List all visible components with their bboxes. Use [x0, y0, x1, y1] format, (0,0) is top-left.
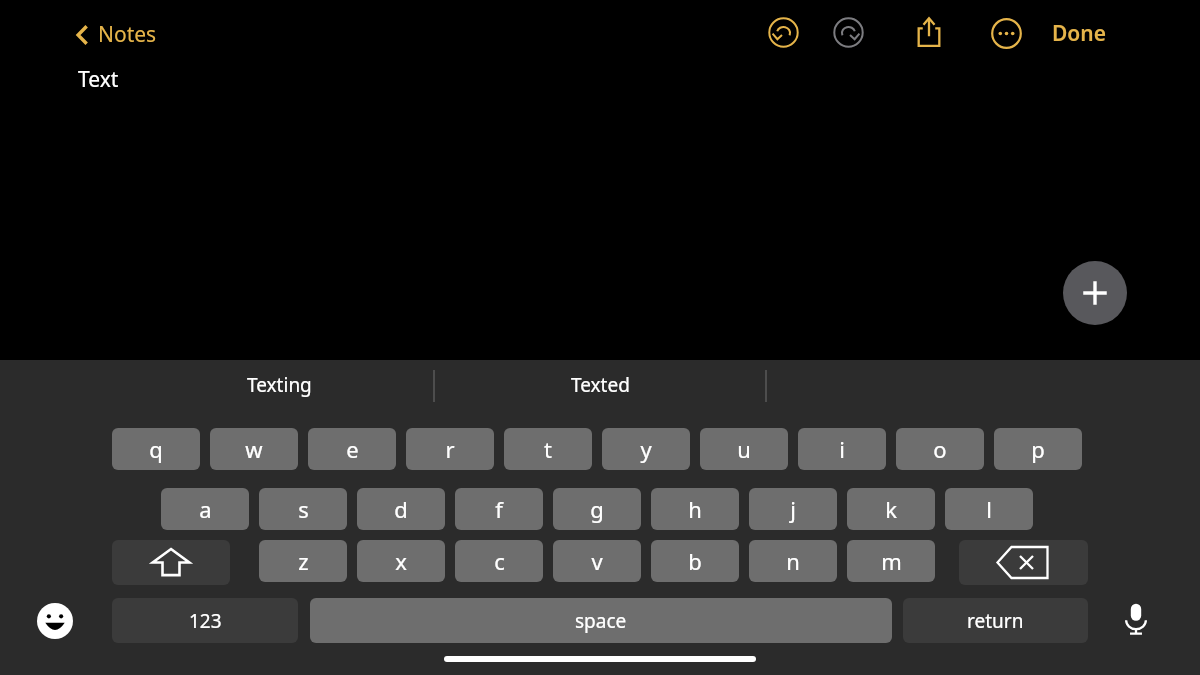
button[interactable]: k [847, 488, 935, 530]
button[interactable]: i [798, 428, 886, 470]
staticText: k [885, 494, 897, 524]
staticText: f [495, 494, 503, 524]
button[interactable]: Undo [766, 15, 800, 49]
staticText: z [298, 546, 309, 576]
button[interactable]: v [553, 540, 641, 582]
button[interactable]: j [749, 488, 837, 530]
button[interactable]: q [112, 428, 200, 470]
button[interactable]: o [896, 428, 984, 470]
button[interactable]: e [308, 428, 396, 470]
button[interactable]: Emoji keyboard [34, 600, 76, 642]
button[interactable]: return [903, 598, 1088, 643]
button[interactable]: 123 [112, 598, 298, 643]
button[interactable]: r [406, 428, 494, 470]
staticText: l [986, 494, 992, 524]
button[interactable]: x [357, 540, 445, 582]
staticText: b [688, 546, 702, 576]
staticText: g [590, 494, 604, 524]
button[interactable]: g [553, 488, 641, 530]
button[interactable]: h [651, 488, 739, 530]
button[interactable]: Texted [434, 360, 766, 410]
button[interactable]: Texting [124, 360, 434, 410]
staticText: n [786, 546, 800, 576]
button[interactable]: c [455, 540, 543, 582]
staticText: Texting [247, 372, 312, 398]
staticText: p [1031, 434, 1045, 464]
button[interactable]: w [210, 428, 298, 470]
staticText: s [298, 494, 309, 524]
staticText: a [199, 494, 212, 524]
staticText: Done [1052, 19, 1107, 48]
button[interactable]: d [357, 488, 445, 530]
staticText: x [395, 546, 407, 576]
staticText: w [245, 434, 263, 464]
button[interactable]: Backspace [959, 540, 1088, 585]
staticText: return [967, 608, 1024, 634]
button[interactable]: m [847, 540, 935, 582]
staticText: v [591, 546, 603, 576]
button[interactable]: Redo [831, 15, 865, 49]
button[interactable]: More options [987, 14, 1025, 52]
staticText: i [839, 434, 845, 464]
staticText: m [881, 546, 902, 576]
button[interactable]: p [994, 428, 1082, 470]
staticText: r [445, 434, 455, 464]
button[interactable]: Share [908, 11, 950, 53]
staticText: 123 [189, 608, 222, 634]
button[interactable]: y [602, 428, 690, 470]
staticText: u [737, 434, 751, 464]
staticText: d [394, 494, 408, 524]
staticText: y [640, 434, 652, 464]
staticText: e [346, 434, 359, 464]
button[interactable]: z [259, 540, 347, 582]
button[interactable]: b [651, 540, 739, 582]
button[interactable]: f [455, 488, 543, 530]
staticText: Notes [98, 20, 157, 49]
button[interactable]: s [259, 488, 347, 530]
button[interactable]: l [945, 488, 1033, 530]
staticText: o [933, 434, 947, 464]
staticText: Texted [571, 372, 630, 398]
staticText: space [575, 608, 627, 634]
button[interactable]: t [504, 428, 592, 470]
button[interactable]: Dictate [1113, 596, 1159, 642]
staticText: q [149, 434, 163, 464]
button[interactable]: space [310, 598, 892, 643]
staticText: Text [78, 65, 119, 94]
button[interactable]: u [700, 428, 788, 470]
button[interactable]: Notes [72, 16, 161, 53]
staticText: h [688, 494, 702, 524]
button[interactable]: a [161, 488, 249, 530]
button[interactable]: n [749, 540, 837, 582]
staticText: t [544, 434, 552, 464]
button[interactable]: Add [1063, 261, 1127, 325]
button[interactable]: Done [1046, 14, 1113, 53]
staticText: c [494, 546, 505, 576]
button[interactable]: Shift [112, 540, 230, 585]
staticText: j [790, 494, 796, 524]
